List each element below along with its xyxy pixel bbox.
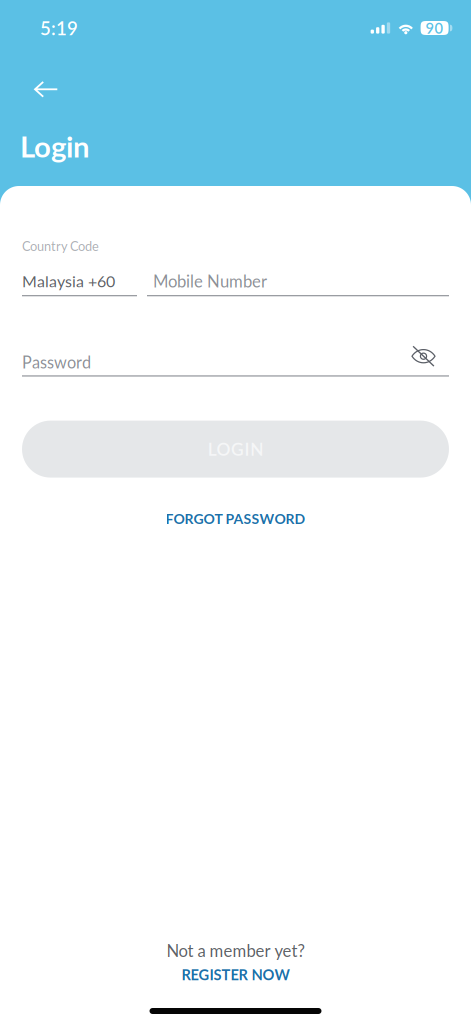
staticText: 90 [426,19,444,37]
button[interactable]: Show password [411,352,449,373]
staticText: Malaysia +60 [22,271,115,291]
staticText: FORGOT PASSWORD [165,510,305,527]
staticText: REGISTER NOW [181,966,289,983]
button[interactable]: LOGIN [22,421,449,478]
staticText: 5:19 [40,17,78,39]
staticText: LOGIN [208,439,263,459]
button[interactable]: REGISTER NOW [181,967,289,982]
staticText: Not a member yet? [166,940,304,960]
button[interactable]: Back [0,56,76,108]
staticText: Login [20,129,90,164]
staticText: Country Code [22,238,99,254]
staticText: Mobile Number [153,271,267,291]
button[interactable]: FORGOT PASSWORD [22,511,449,527]
staticText: Password [22,352,91,372]
